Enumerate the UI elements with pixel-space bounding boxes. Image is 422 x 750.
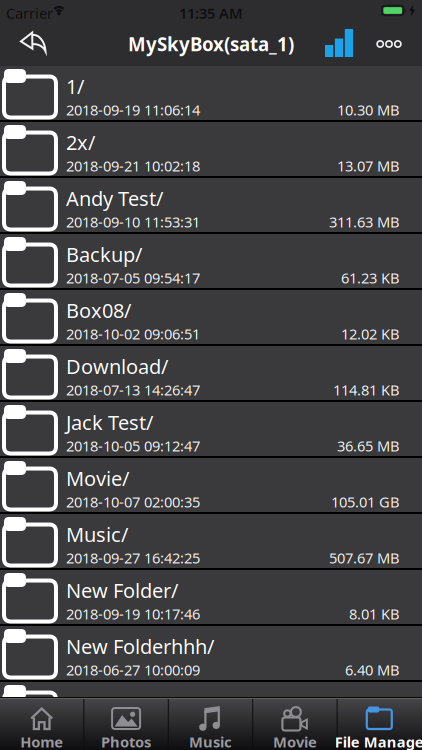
staticText: 36.65 MB	[337, 436, 400, 455]
staticText: Backup/	[66, 241, 142, 268]
staticText: 11:35 AM	[179, 3, 243, 23]
staticText: New Folder/	[66, 577, 178, 604]
staticText: 2018-06-27 10:00:09	[66, 660, 200, 679]
staticText: Download/	[66, 353, 168, 380]
staticText: 61.23 KB	[341, 268, 400, 287]
button[interactable]	[0, 682, 422, 736]
staticText: Home	[20, 732, 63, 750]
staticText: 2018-09-27 16:42:25	[66, 548, 200, 567]
button[interactable]: Back	[0, 22, 60, 66]
staticText: File Manage	[335, 732, 422, 750]
staticText: Music/	[66, 521, 128, 548]
button[interactable]: New Folder/	[0, 570, 422, 624]
staticText: 2x/	[66, 129, 95, 156]
staticText: 6.40 MB	[345, 660, 400, 679]
staticText: Movie	[273, 732, 317, 750]
staticText: 12.02 KB	[341, 324, 400, 343]
staticText: 10.30 MB	[337, 100, 400, 119]
button[interactable]: Music	[169, 699, 252, 750]
staticText: 2018-07-05 09:54:17	[66, 268, 200, 287]
button[interactable]: Music/	[0, 514, 422, 568]
staticText: 311.63 MB	[329, 212, 400, 231]
button[interactable]: Transfer status	[0, 22, 353, 57]
staticText: 2018-09-10 11:53:31	[66, 212, 200, 231]
staticText: Photos	[101, 732, 151, 750]
staticText: Carrier	[6, 3, 53, 23]
staticText: Andy Test/	[66, 185, 163, 212]
button[interactable]: Home	[0, 699, 83, 750]
button[interactable]: File Manage	[338, 699, 421, 750]
button[interactable]: More	[0, 22, 402, 49]
staticText: 2018-09-19 10:17:46	[66, 604, 200, 623]
button[interactable]: Backup/	[0, 234, 422, 288]
staticText: 8.01 KB	[349, 604, 400, 623]
staticText: 2018-10-02 09:06:51	[66, 324, 200, 343]
staticText: MySkyBox(sata_1)	[128, 32, 294, 56]
staticText: 2018-10-05 09:12:47	[66, 436, 200, 455]
button[interactable]: Box08/	[0, 290, 422, 344]
staticText: 105.01 GB	[331, 492, 400, 511]
staticText: 114.81 KB	[333, 380, 400, 399]
button[interactable]: Jack Test/	[0, 402, 422, 456]
staticText: 13.07 MB	[337, 156, 400, 175]
staticText: 2018-09-19 11:06:14	[66, 100, 200, 119]
staticText: 1/	[66, 73, 84, 100]
button[interactable]: Movie	[253, 699, 337, 750]
button[interactable]: Movie/	[0, 458, 422, 512]
staticText: 507.67 MB	[329, 548, 400, 567]
staticText: Jack Test/	[66, 409, 153, 436]
staticText: 2018-09-21 10:02:18	[66, 156, 200, 175]
staticText: New Folderhhh/	[66, 633, 214, 660]
button[interactable]: Photos	[84, 699, 168, 750]
button[interactable]: Download/	[0, 346, 422, 400]
staticText: 2018-10-07 02:00:35	[66, 492, 200, 511]
staticText: Box08/	[66, 297, 131, 324]
button[interactable]: Andy Test/	[0, 178, 422, 232]
button[interactable]: 2x/	[0, 122, 422, 176]
button[interactable]: New Folderhhh/	[0, 626, 422, 680]
button[interactable]: 1/	[0, 66, 422, 120]
staticText: Music	[189, 732, 232, 750]
staticText: Movie/	[66, 465, 129, 492]
staticText: 2018-07-13 14:26:47	[66, 380, 200, 399]
